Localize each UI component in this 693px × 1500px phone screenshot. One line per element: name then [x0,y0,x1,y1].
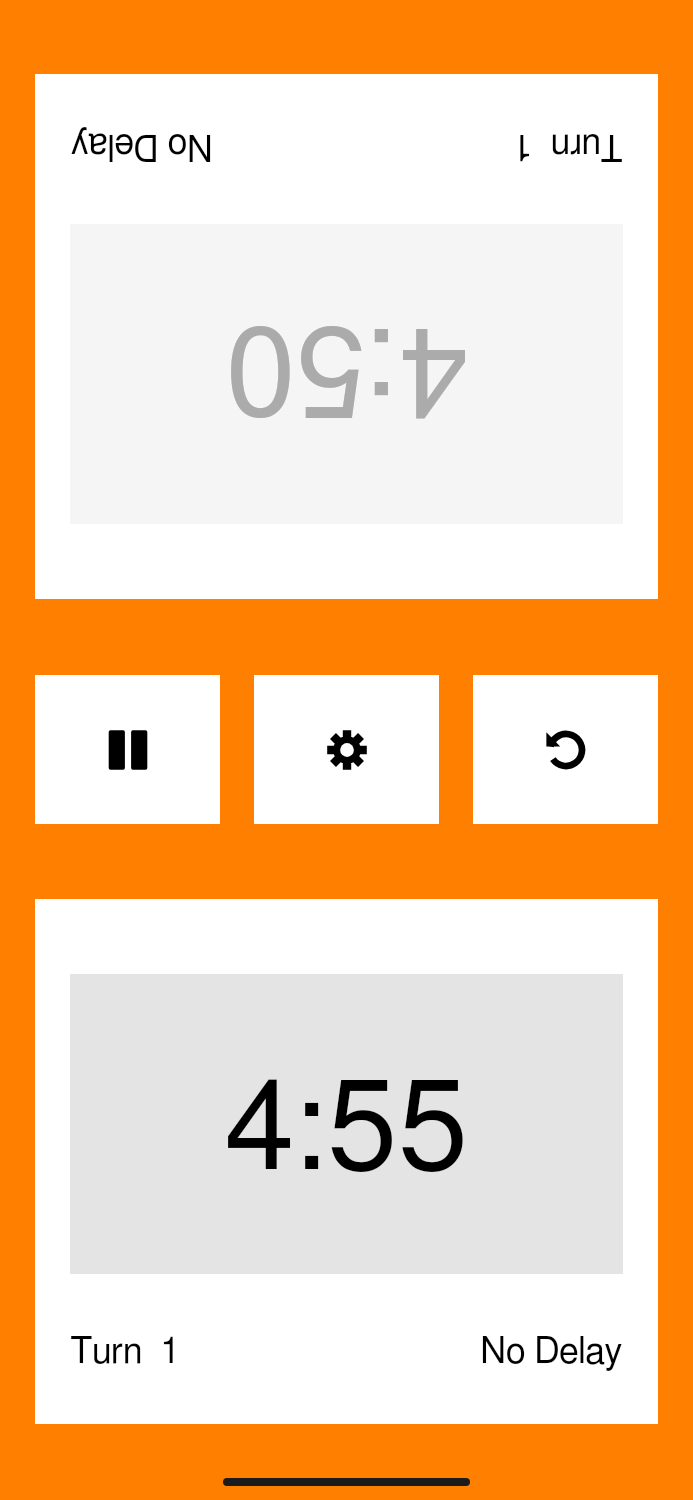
button[interactable]: Pause [35,675,220,824]
button[interactable]: Settings [254,675,439,824]
staticText: No Delay [70,128,213,164]
button[interactable]: 4:55 [35,899,658,1424]
staticText: No Delay [480,1334,623,1370]
staticText: 4:50 [224,304,469,430]
staticText: 4:55 [224,1068,469,1194]
button[interactable]: Reset [473,675,658,824]
staticText: Turn 1 [70,1334,181,1370]
staticText: Turn 1 [512,128,623,164]
button[interactable]: 4:50 [35,74,658,599]
